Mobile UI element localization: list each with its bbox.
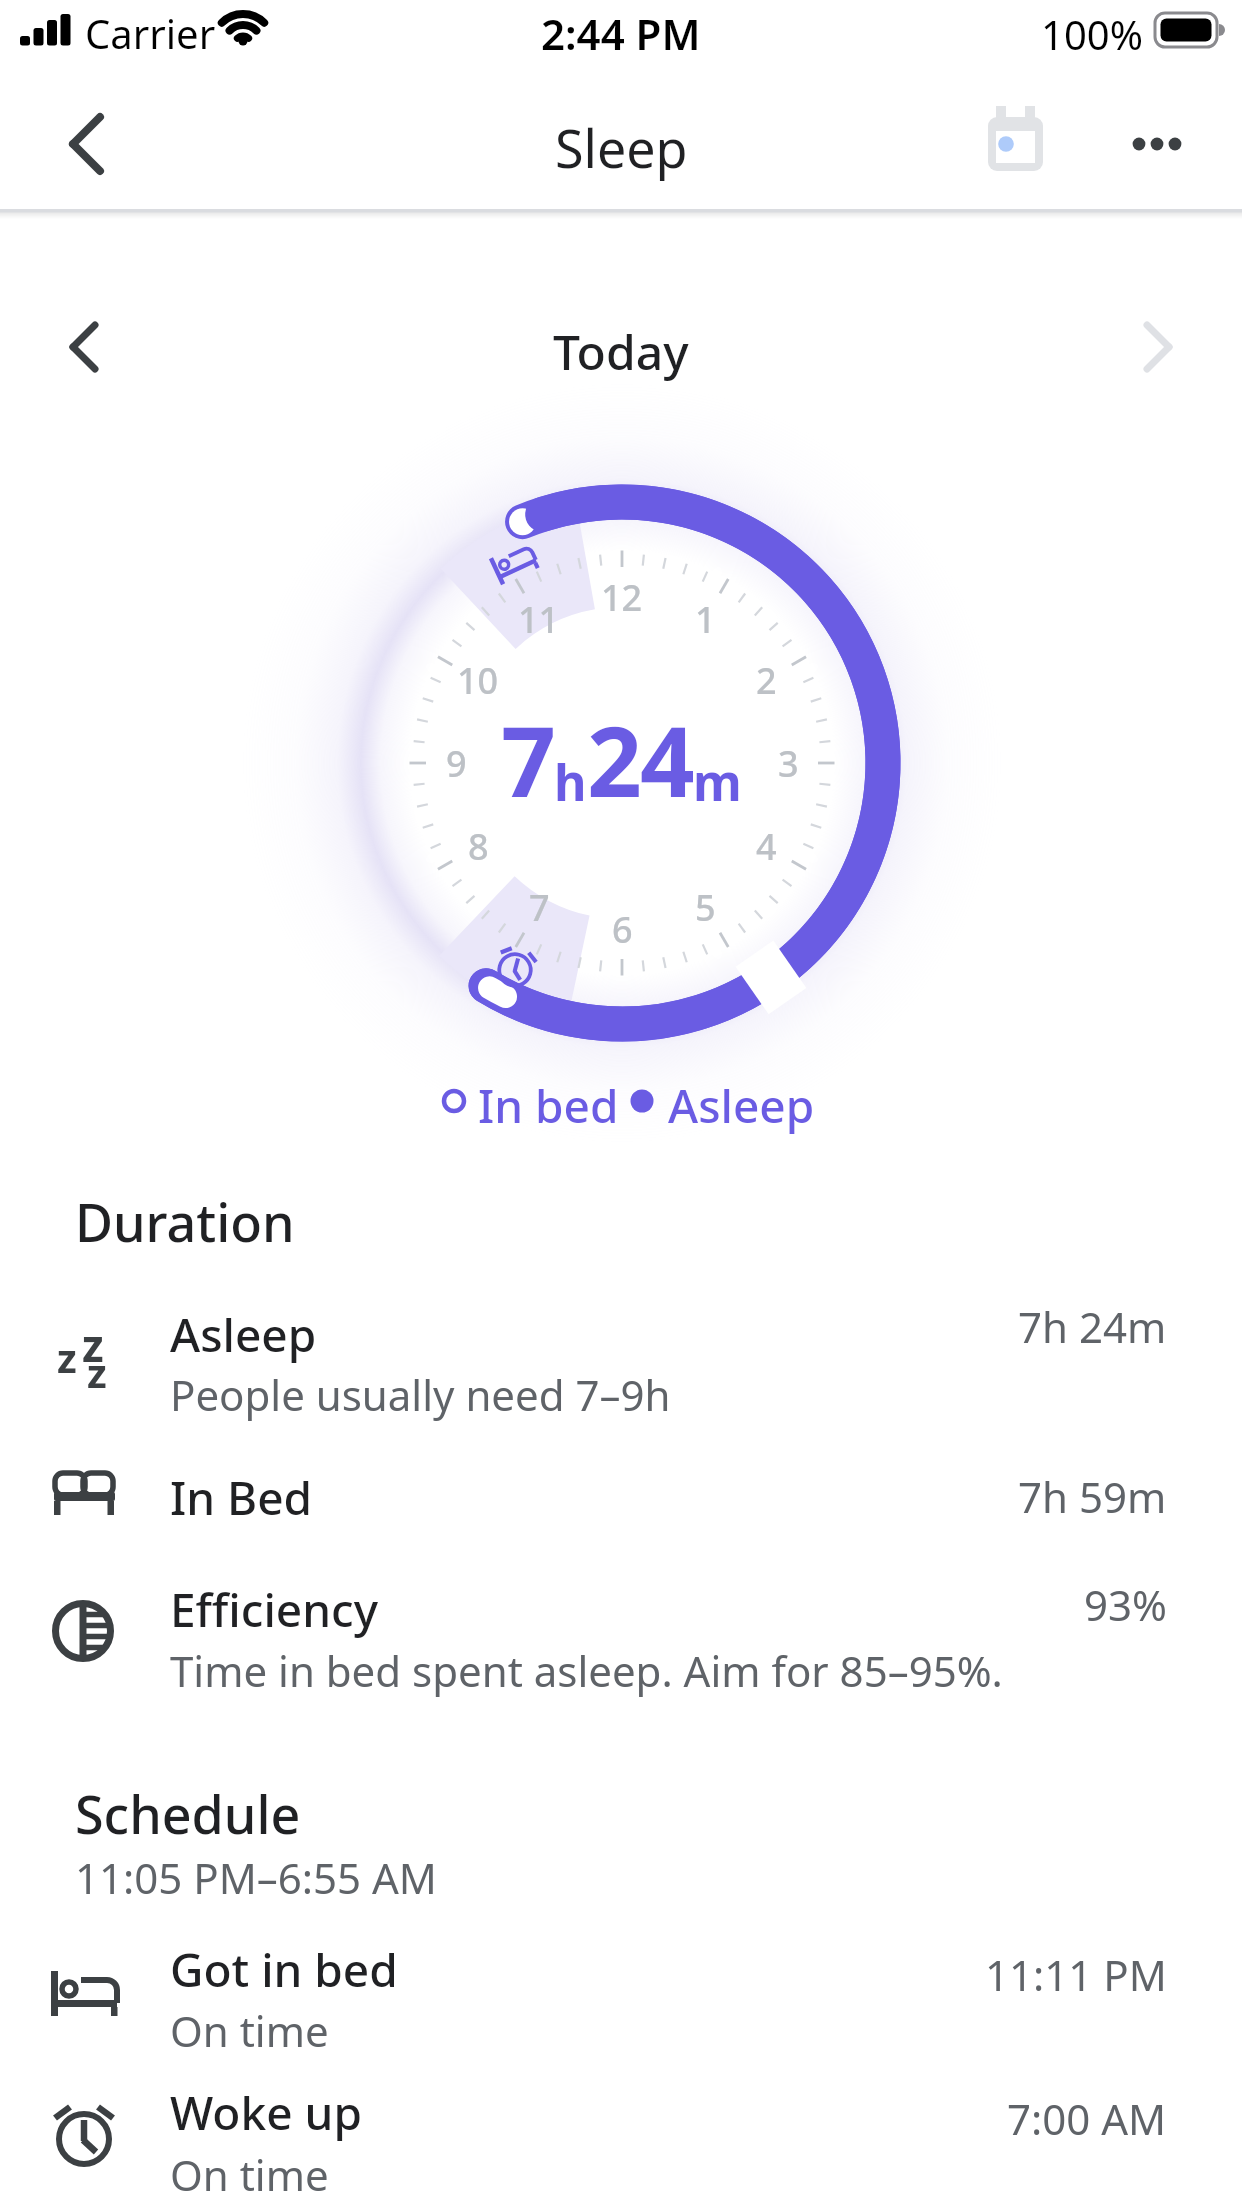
staticText: 10 <box>457 656 499 705</box>
staticText: 3 <box>778 739 799 788</box>
staticText: Sleep <box>555 112 688 183</box>
staticText: 7:00 AM <box>1007 2090 1167 2147</box>
staticText: 100% <box>1041 7 1143 61</box>
staticText: Time in bed spent asleep. Aim for 85–95%… <box>170 1642 1003 1699</box>
staticText: In bed <box>478 1074 619 1137</box>
staticText: z <box>57 1330 77 1384</box>
staticText: 4 <box>756 822 777 871</box>
button[interactable] <box>55 114 115 174</box>
staticText: 93% <box>1084 1576 1167 1633</box>
button[interactable] <box>0 1565 1242 1705</box>
staticText: z <box>82 1315 104 1375</box>
button[interactable] <box>55 318 115 378</box>
staticText: 6 <box>612 905 633 954</box>
button[interactable] <box>0 1290 1242 1430</box>
staticText: 2:44 PM <box>541 5 701 62</box>
staticText: 7 <box>529 883 550 932</box>
staticText: 8 <box>468 822 489 871</box>
staticText: z <box>87 1345 107 1399</box>
staticText: 9 <box>446 739 467 788</box>
staticText: Today <box>553 319 689 384</box>
staticText: 11 <box>518 595 560 644</box>
staticText: 5 <box>695 883 716 932</box>
staticText: h <box>554 748 587 816</box>
staticText: 7 <box>501 694 554 822</box>
staticText: 12 <box>601 573 643 622</box>
staticText: In Bed <box>170 1466 313 1529</box>
staticText: 11:11 PM <box>985 1946 1167 2003</box>
staticText: Got in bed <box>170 1938 398 2001</box>
staticText: 7h 24m <box>1018 1298 1167 1355</box>
staticText: Schedule <box>75 1778 301 1849</box>
button[interactable] <box>1125 114 1189 178</box>
button[interactable] <box>0 1450 1242 1540</box>
staticText: Asleep <box>668 1074 815 1137</box>
staticText: On time <box>170 2146 329 2203</box>
button[interactable] <box>0 2068 1242 2208</box>
staticText: Efficiency <box>170 1578 378 1641</box>
staticText: m <box>693 748 742 816</box>
button[interactable] <box>980 110 1050 180</box>
staticText: 11:05 PM–6:55 AM <box>75 1849 437 1906</box>
button[interactable] <box>1127 318 1187 378</box>
staticText: 1 <box>695 595 716 644</box>
staticText: 2 <box>756 656 777 705</box>
staticText: On time <box>170 2002 329 2059</box>
staticText: Woke up <box>170 2081 362 2144</box>
staticText: 7h 59m <box>1018 1468 1167 1525</box>
staticText: 24 <box>587 694 693 822</box>
staticText: People usually need 7–9h <box>170 1366 671 1423</box>
button[interactable] <box>0 1925 1242 2065</box>
staticText: Duration <box>75 1186 295 1257</box>
staticText: Carrier <box>85 6 216 60</box>
staticText: Asleep <box>170 1303 317 1366</box>
